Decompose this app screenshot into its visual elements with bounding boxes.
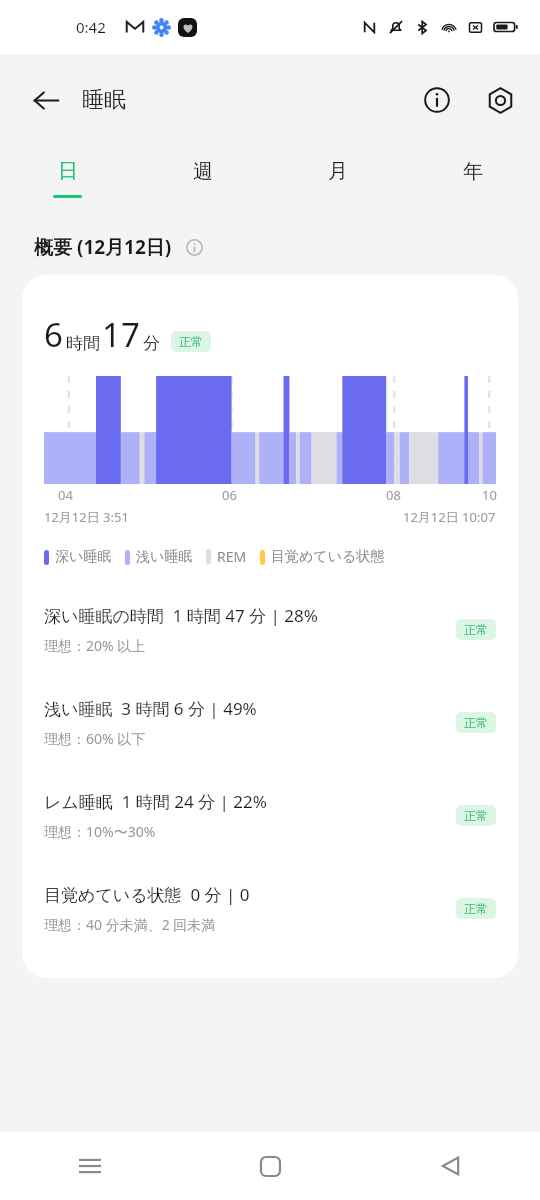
staticText: 時間 bbox=[66, 333, 100, 354]
button[interactable]: 日 bbox=[0, 145, 135, 219]
staticText: 正常 bbox=[464, 622, 488, 637]
staticText: 理想：60% 以下 bbox=[44, 729, 146, 748]
staticText: 日 bbox=[58, 159, 78, 184]
staticText: 理想：10%〜30% bbox=[44, 822, 156, 841]
staticText: 12月12日 3:51 bbox=[44, 508, 129, 526]
staticText: 06 bbox=[222, 486, 237, 504]
button[interactable]: Settings bbox=[476, 76, 524, 124]
staticText: 理想：20% 以上 bbox=[44, 636, 146, 655]
staticText: 12月12日 10:07 bbox=[403, 508, 496, 526]
button[interactable]: 年 bbox=[405, 145, 540, 219]
staticText: 睡眠 bbox=[82, 86, 126, 114]
staticText: 正常 bbox=[464, 808, 488, 823]
button[interactable]: レム睡眠 1 時間 24 分 | 22% bbox=[44, 788, 496, 843]
staticText: 08 bbox=[386, 486, 401, 504]
staticText: 10 bbox=[482, 486, 497, 504]
staticText: 目覚めている状態 bbox=[271, 548, 385, 566]
staticText: REM bbox=[217, 547, 247, 566]
button[interactable]: Home bbox=[180, 1132, 360, 1200]
staticText: 17 bbox=[102, 312, 140, 357]
staticText: 浅い睡眠 3 時間 6 分 | 49% bbox=[44, 697, 257, 720]
staticText: レム睡眠 1 時間 24 分 | 22% bbox=[44, 790, 267, 813]
staticText: 6 bbox=[44, 312, 63, 357]
button[interactable]: 深い睡眠の時間 1 時間 47 分 | 28% bbox=[44, 602, 496, 657]
staticText: 正常 bbox=[464, 715, 488, 730]
staticText: 概要 (12月12日) bbox=[34, 234, 172, 260]
staticText: 正常 bbox=[179, 334, 203, 349]
staticText: 深い睡眠 bbox=[55, 548, 112, 566]
button[interactable]: 月 bbox=[270, 145, 405, 219]
staticText: 0:42 bbox=[76, 17, 106, 37]
button[interactable]: Information bbox=[413, 76, 461, 124]
staticText: 深い睡眠の時間 1 時間 47 分 | 28% bbox=[44, 604, 318, 627]
staticText: 週 bbox=[193, 159, 213, 184]
staticText: 月 bbox=[328, 159, 348, 184]
staticText: 04 bbox=[58, 486, 73, 504]
button[interactable]: 週 bbox=[135, 145, 270, 219]
button[interactable]: Recent apps bbox=[0, 1132, 180, 1200]
button[interactable]: 浅い睡眠 3 時間 6 分 | 49% bbox=[44, 695, 496, 750]
staticText: 理想：40 分未満、2 回未満 bbox=[44, 915, 216, 934]
staticText: 浅い睡眠 bbox=[136, 548, 193, 566]
staticText: 正常 bbox=[464, 901, 488, 916]
button[interactable]: Summary info bbox=[182, 235, 206, 259]
staticText: 年 bbox=[463, 159, 483, 184]
staticText: 分 bbox=[143, 333, 160, 354]
button[interactable]: Back bbox=[360, 1132, 540, 1200]
button[interactable]: 目覚めている状態 0 分 | 0 bbox=[44, 881, 496, 936]
staticText: 目覚めている状態 0 分 | 0 bbox=[44, 883, 250, 906]
button[interactable]: Back bbox=[22, 76, 70, 124]
